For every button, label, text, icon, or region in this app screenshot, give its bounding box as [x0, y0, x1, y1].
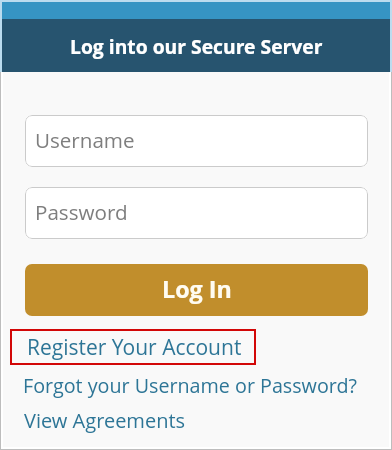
staticText: Log into our Secure Server	[70, 33, 323, 59]
button[interactable]: Log In	[25, 264, 368, 316]
staticText: Password	[35, 198, 128, 226]
button[interactable]: View Agreements	[24, 403, 186, 437]
button[interactable]: Forgot your Username or Password?	[23, 368, 357, 402]
staticText: Username	[35, 126, 135, 154]
staticText: Register Your Account	[27, 333, 242, 362]
staticText: View Agreements	[24, 407, 186, 434]
button[interactable]: Username	[25, 115, 368, 167]
staticText: Log In	[162, 273, 232, 305]
button[interactable]: Password	[25, 187, 368, 239]
button[interactable]: Register Your Account	[10, 329, 256, 365]
staticText: Forgot your Username or Password?	[23, 372, 357, 399]
